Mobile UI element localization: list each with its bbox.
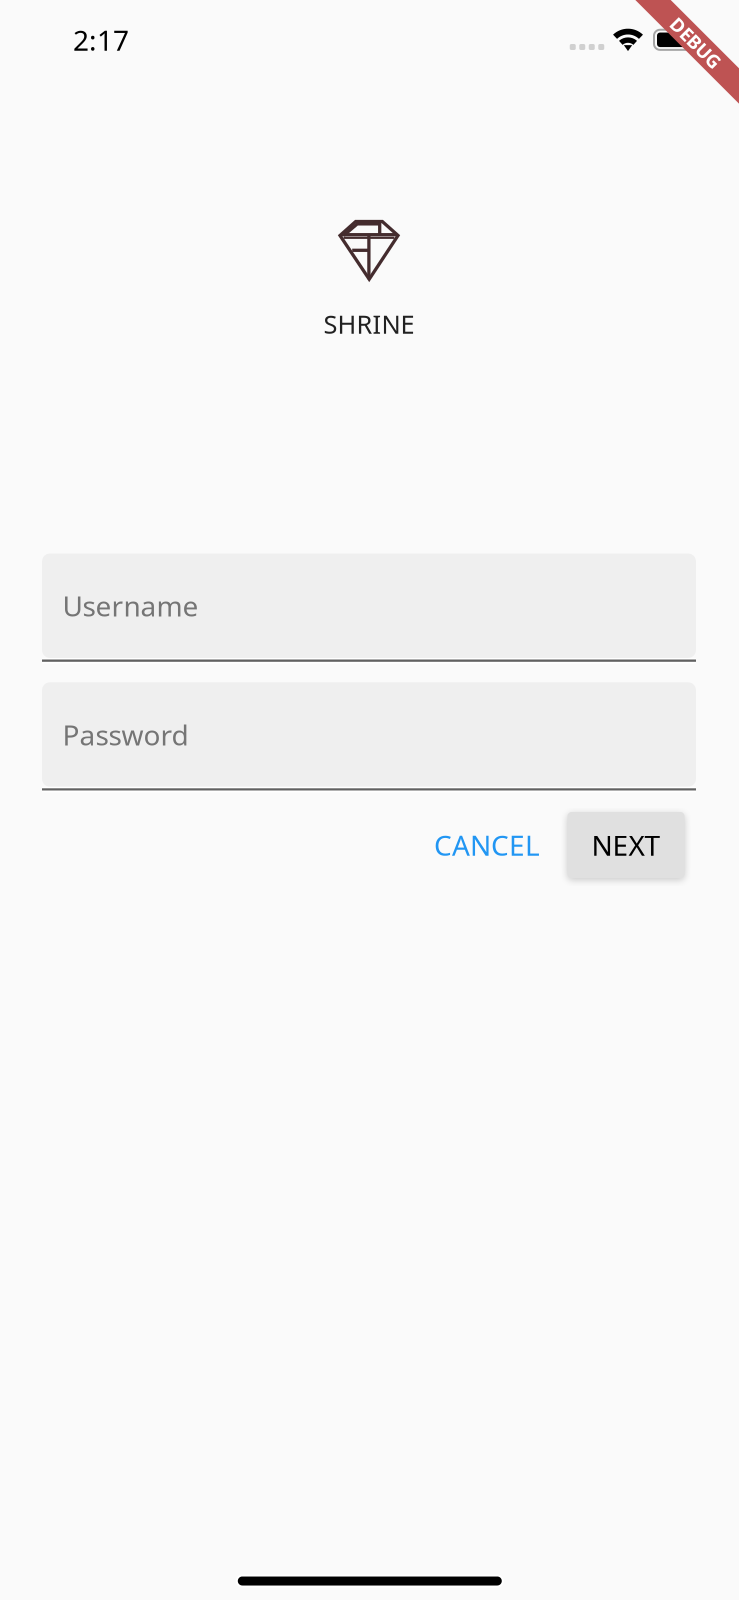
staticText: Username [62, 587, 198, 624]
staticText: CANCEL [434, 826, 540, 864]
staticText: Password [62, 716, 188, 753]
staticText: NEXT [591, 826, 660, 864]
staticText: SHRINE [323, 307, 414, 341]
staticText: DEBUG [664, 31, 728, 55]
button[interactable]: NEXT [567, 812, 684, 878]
staticText: 2:17 [73, 21, 129, 59]
button[interactable]: CANCEL [407, 812, 567, 878]
